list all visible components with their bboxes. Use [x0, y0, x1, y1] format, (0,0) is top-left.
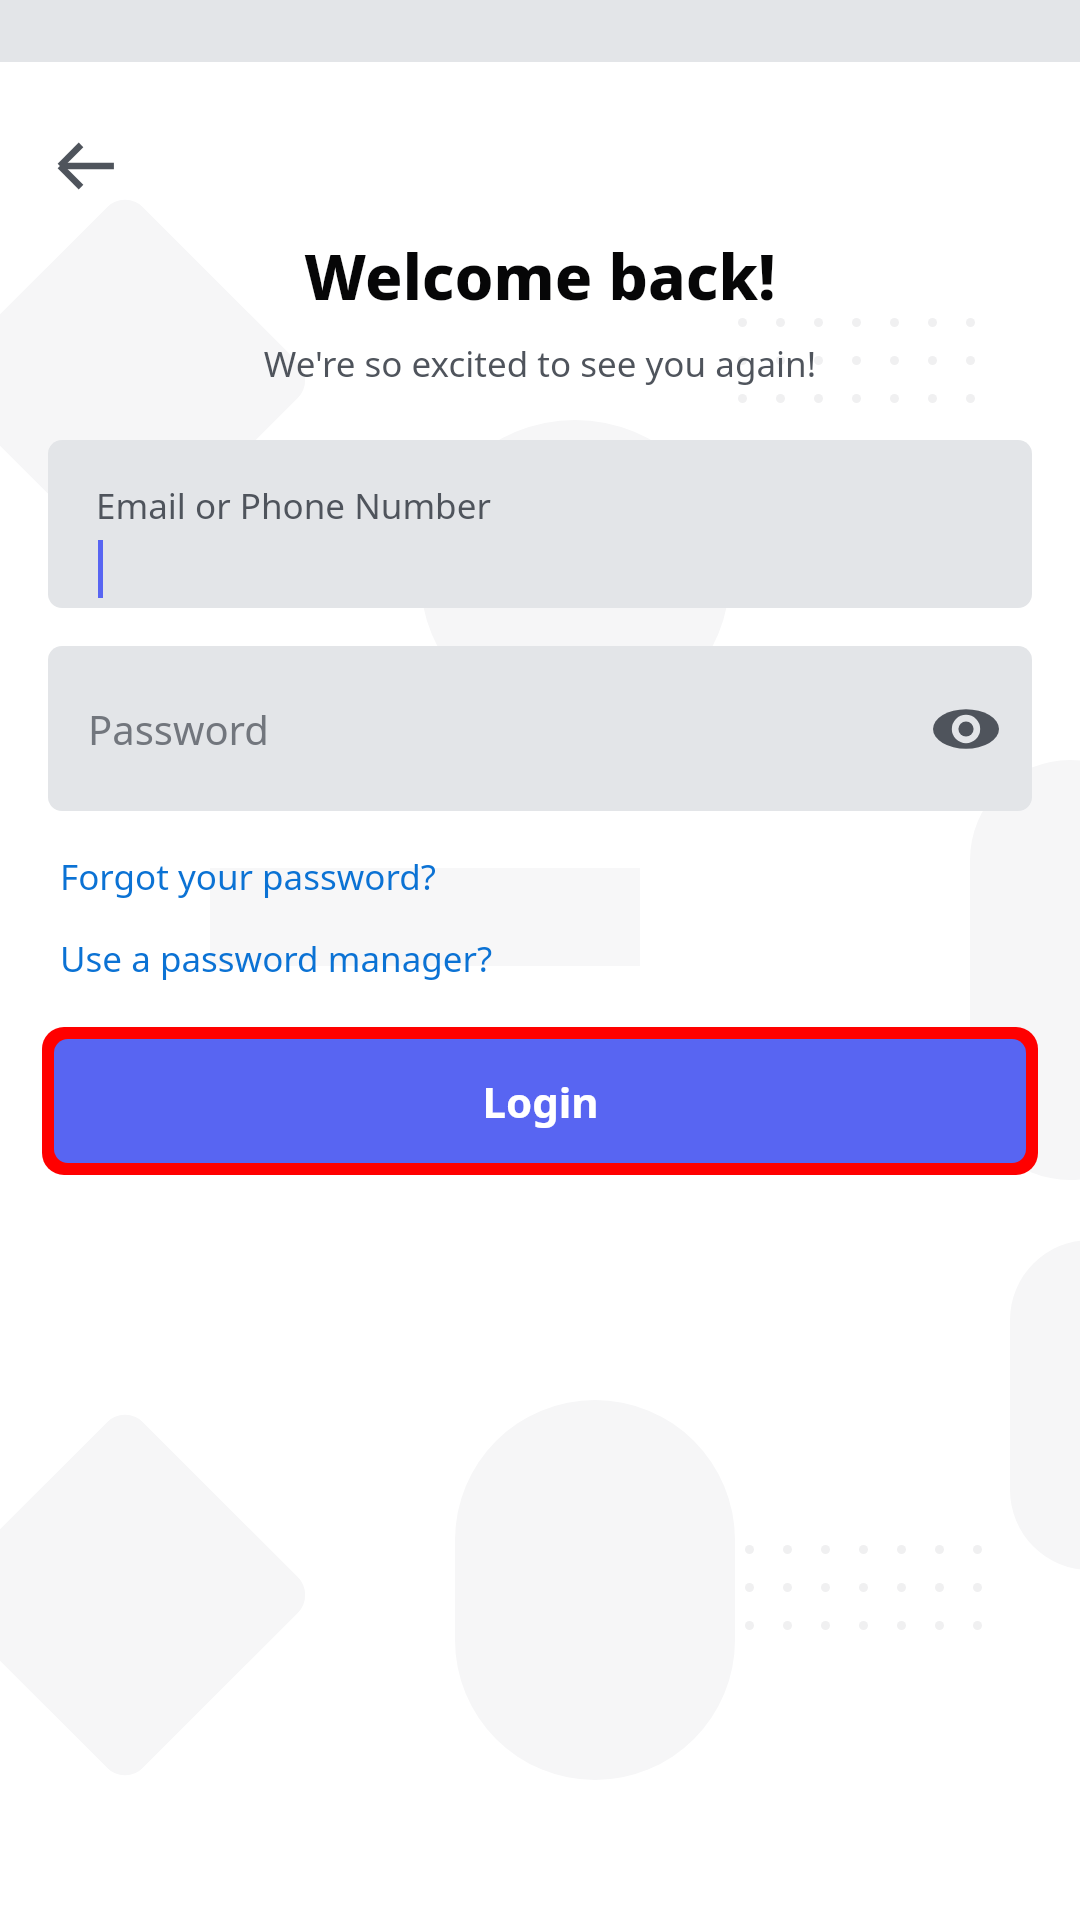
button[interactable]: Login [54, 1039, 1026, 1163]
staticText: Forgot your password? [60, 853, 436, 901]
button[interactable]: Use a password manager? [60, 935, 493, 983]
staticText: Welcome back! [0, 234, 1080, 318]
staticText: Login [482, 1073, 599, 1130]
button[interactable]: Password [48, 646, 1032, 811]
staticText: Use a password manager? [60, 935, 493, 983]
button[interactable]: Back [40, 120, 132, 212]
button[interactable]: Forgot your password? [60, 853, 436, 901]
button[interactable]: Show password [924, 687, 1008, 771]
staticText: Password [88, 702, 269, 756]
staticText: We're so excited to see you again! [0, 340, 1080, 388]
staticText: Email or Phone Number [96, 482, 491, 530]
button[interactable]: Email or Phone Number [48, 440, 1032, 608]
